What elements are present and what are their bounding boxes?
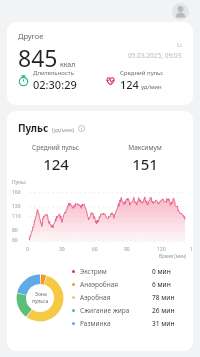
button[interactable]: Средний пульс <box>11 143 100 174</box>
staticText: 30 <box>59 246 65 253</box>
staticText: 130 <box>12 203 21 210</box>
staticText: Время (мин) <box>159 253 187 259</box>
staticText: 05.03.2025, 09:03 <box>128 51 182 60</box>
button[interactable]: Аэробная <box>72 291 183 304</box>
staticText: 845 <box>18 42 58 73</box>
staticText: 26 мин <box>152 306 175 315</box>
button[interactable]: Длительность <box>18 69 105 92</box>
staticText: Разминка <box>80 319 111 328</box>
staticText: 124 <box>43 154 69 174</box>
staticText: Зона <box>35 291 47 298</box>
staticText: 02:30:29 <box>33 77 77 92</box>
staticText: 6 мин <box>152 280 171 289</box>
staticText: 78 мин <box>152 293 175 302</box>
button[interactable]: Экстрим <box>72 265 183 278</box>
staticText: 120 <box>157 246 166 253</box>
button[interactable]: Другое <box>7 22 193 105</box>
staticText: 124 <box>120 77 139 92</box>
staticText: Максимум <box>128 143 162 152</box>
button[interactable]: Максимум <box>100 143 189 174</box>
staticText: Аэробная <box>80 293 111 302</box>
staticText: уд/мин <box>141 83 162 91</box>
button[interactable]: Анаэробная <box>72 278 183 291</box>
button[interactable]: Профиль <box>172 3 189 20</box>
staticText: 80 <box>12 227 18 234</box>
staticText: 160 <box>12 189 21 196</box>
staticText: Средний пульс <box>32 143 79 152</box>
staticText: 0 мин <box>152 267 171 276</box>
staticText: 90 <box>124 246 130 253</box>
staticText: (уд/мин) <box>52 126 75 133</box>
staticText: Другое <box>18 31 44 41</box>
button[interactable]: Зона пульса <box>14 272 66 324</box>
staticText: Li <box>177 41 182 49</box>
staticText: Экстрим <box>80 267 107 276</box>
button[interactable]: Пульс <box>7 111 193 351</box>
button[interactable]: Информация <box>78 125 85 132</box>
staticText: 151 <box>132 154 158 174</box>
button[interactable]: Разминка <box>72 317 183 330</box>
staticText: 31 мин <box>152 319 175 328</box>
staticText: ккал <box>60 60 76 70</box>
staticText: 150 <box>190 246 193 253</box>
staticText: Длительность <box>33 69 74 77</box>
staticText: Анаэробная <box>80 280 119 289</box>
staticText: Пульс <box>12 179 27 186</box>
staticText: Сжигание жира <box>80 306 130 315</box>
staticText: 110 <box>12 213 21 220</box>
staticText: 60 <box>92 246 98 253</box>
staticText: пульса <box>32 298 49 305</box>
button[interactable]: Средний пульс <box>105 69 193 92</box>
staticText: 0 <box>26 246 29 253</box>
staticText: 60 <box>12 237 18 244</box>
staticText: Средний пульс <box>120 69 164 77</box>
staticText: Пульс <box>18 121 49 135</box>
button[interactable]: Сжигание жира <box>72 304 183 317</box>
